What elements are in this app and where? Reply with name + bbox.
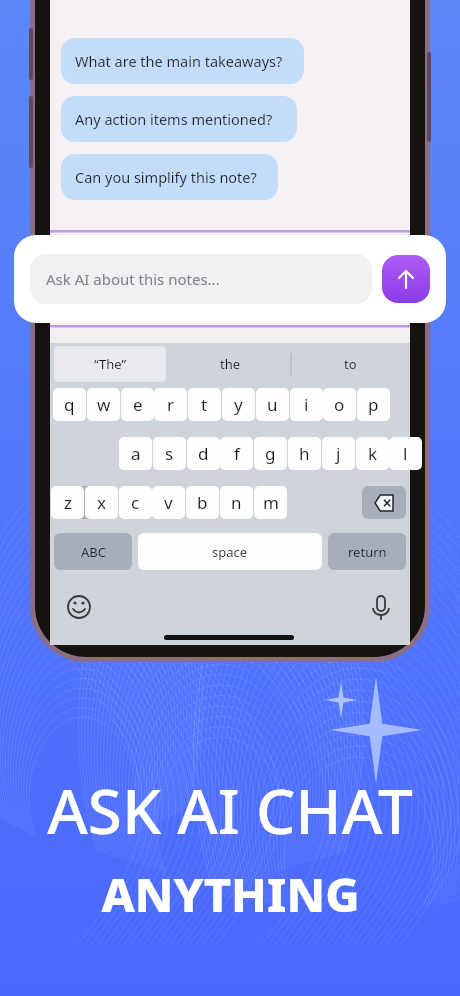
staticText: g (265, 442, 276, 465)
staticText: p (368, 393, 379, 416)
button[interactable]: m (254, 486, 287, 519)
button[interactable]: r (154, 388, 187, 421)
button[interactable]: b (186, 486, 219, 519)
button[interactable]: c (119, 486, 152, 519)
staticText: x (97, 491, 106, 514)
button[interactable]: Can you simplify this note? (61, 154, 278, 200)
button[interactable]: ABC (54, 533, 132, 570)
staticText: What are the main takeaways? (75, 51, 283, 71)
staticText: f (234, 442, 240, 465)
staticText: a (131, 442, 141, 465)
button[interactable]: Shift (54, 486, 98, 519)
button[interactable]: s (153, 437, 186, 470)
staticText: k (368, 442, 378, 465)
button[interactable]: x (85, 486, 118, 519)
staticText: d (198, 442, 209, 465)
staticText: o (334, 393, 345, 416)
button[interactable]: e (121, 388, 154, 421)
staticText: Ask AI about this notes... (46, 269, 220, 289)
button[interactable]: the (170, 346, 290, 382)
staticText: u (267, 393, 278, 416)
button[interactable]: space (138, 533, 322, 570)
button[interactable]: u (256, 388, 289, 421)
staticText: Any action items mentioned? (75, 109, 273, 129)
staticText: m (263, 491, 279, 514)
staticText: “The” (94, 355, 127, 373)
staticText: q (64, 393, 75, 416)
staticText: i (304, 393, 309, 416)
button[interactable]: d (187, 437, 220, 470)
button[interactable]: i (290, 388, 323, 421)
staticText: the (220, 355, 241, 373)
button[interactable]: f (220, 437, 253, 470)
staticText: j (336, 442, 341, 465)
staticText: ABC (81, 543, 106, 561)
button[interactable]: What are the main takeaways? (61, 38, 304, 84)
button[interactable]: a (119, 437, 152, 470)
staticText: h (299, 442, 310, 465)
button[interactable]: y (222, 388, 255, 421)
staticText: b (197, 491, 208, 514)
staticText: c (131, 491, 140, 514)
button[interactable]: n (220, 486, 253, 519)
button[interactable]: w (87, 388, 120, 421)
button[interactable]: to (290, 346, 410, 382)
staticText: e (133, 393, 143, 416)
button[interactable]: o (323, 388, 356, 421)
staticText: z (64, 491, 72, 514)
button[interactable]: v (152, 486, 185, 519)
staticText: v (164, 491, 173, 514)
button[interactable]: Backspace (362, 486, 406, 519)
staticText: Can you simplify this note? (75, 167, 257, 187)
staticText: ANYTHING (101, 862, 360, 926)
staticText: l (403, 442, 408, 465)
button[interactable]: p (357, 388, 390, 421)
staticText: y (234, 393, 243, 416)
button[interactable]: Ask AI about this notes... (30, 254, 372, 304)
button[interactable]: q (53, 388, 86, 421)
staticText: t (201, 393, 208, 416)
button[interactable]: j (322, 437, 355, 470)
button[interactable]: l (389, 437, 422, 470)
staticText: to (344, 355, 357, 373)
button[interactable]: k (356, 437, 389, 470)
button[interactable]: t (188, 388, 221, 421)
button[interactable]: g (254, 437, 287, 470)
button[interactable]: Any action items mentioned? (61, 96, 297, 142)
staticText: s (165, 442, 174, 465)
staticText: space (212, 543, 248, 561)
staticText: n (231, 491, 242, 514)
button[interactable]: return (328, 533, 406, 570)
button[interactable]: “The” (50, 346, 170, 382)
staticText: r (167, 393, 175, 416)
button[interactable]: z (51, 486, 84, 519)
staticText: ASK AI CHAT (47, 768, 413, 852)
staticText: return (348, 543, 387, 561)
button[interactable]: h (288, 437, 321, 470)
staticText: w (97, 393, 111, 416)
button[interactable]: Send (382, 255, 430, 303)
